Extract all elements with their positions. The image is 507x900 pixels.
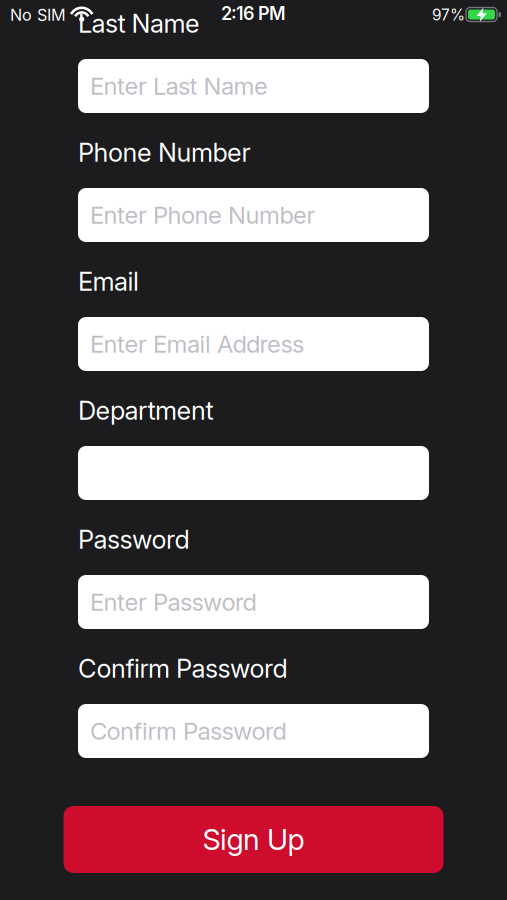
button[interactable]: Enter Phone Number [78, 188, 429, 242]
button[interactable]: Enter Last Name [78, 59, 429, 113]
button[interactable]: Enter Email Address [78, 317, 429, 371]
staticText: Confirm Password [78, 653, 287, 684]
staticText: Enter Email Address [90, 329, 304, 358]
button[interactable]: Enter Password [78, 575, 429, 629]
staticText: Enter Last Name [90, 71, 268, 100]
button[interactable] [78, 446, 429, 500]
staticText: Enter Password [90, 587, 256, 616]
staticText: Email [78, 266, 139, 297]
staticText: Enter Phone Number [90, 200, 315, 229]
staticText: Phone Number [78, 137, 250, 168]
button[interactable]: Sign Up [63, 806, 443, 873]
button[interactable]: Confirm Password [78, 704, 429, 758]
staticText: Password [78, 524, 189, 555]
staticText: No SIM [10, 5, 66, 25]
staticText: 2:16 PM [221, 3, 286, 24]
staticText: Confirm Password [90, 716, 286, 745]
staticText: Sign Up [202, 822, 304, 857]
staticText: 97% [432, 5, 465, 24]
staticText: Last Name [78, 8, 200, 39]
staticText: Department [78, 395, 213, 426]
